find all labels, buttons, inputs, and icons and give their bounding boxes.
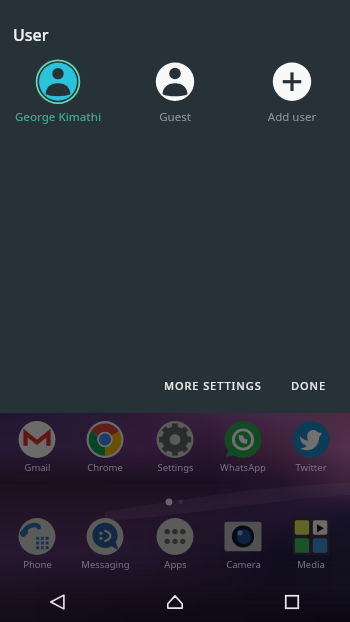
staticText: Messaging [81,558,130,571]
staticText: User [13,24,49,46]
staticText: Chrome [87,461,123,474]
button[interactable]: George Kimathi [10,55,106,125]
staticText: Gmail [24,461,51,474]
button[interactable]: DONE [281,372,336,399]
button[interactable]: Add user [244,55,340,125]
staticText: MORE SETTINGS [164,378,262,393]
button[interactable]: Guest [127,55,223,125]
staticText: Apps [164,558,187,571]
staticText: Guest [127,109,223,125]
button[interactable]: MORE SETTINGS [154,372,272,399]
staticText: Media [297,558,325,571]
staticText: WhatsApp [220,461,266,474]
button[interactable]: Home [116,582,233,622]
staticText: Camera [226,558,261,571]
staticText: Settings [157,461,194,474]
button[interactable]: Back [0,582,116,622]
button[interactable]: Recent apps [233,582,350,622]
staticText: Add user [244,109,340,125]
staticText: Phone [23,558,52,571]
staticText: Twitter [295,461,327,474]
staticText: DONE [291,378,326,393]
staticText: George Kimathi [10,109,106,125]
